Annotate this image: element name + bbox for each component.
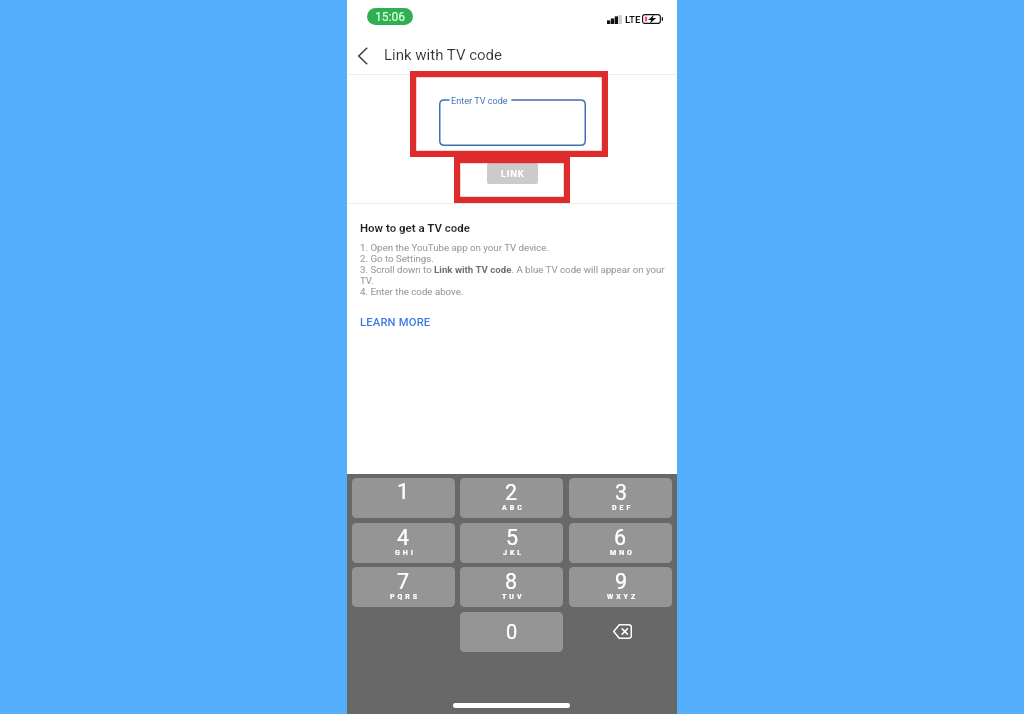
staticText: 1 bbox=[397, 479, 410, 504]
staticText: How to get a TV code bbox=[360, 221, 471, 234]
staticText: 4 bbox=[397, 525, 410, 550]
button[interactable]: 5 bbox=[460, 523, 563, 563]
staticText: 6 bbox=[614, 525, 627, 550]
button[interactable]: 0 bbox=[460, 612, 563, 652]
button[interactable]: 8 bbox=[460, 567, 563, 607]
staticText: LTE bbox=[625, 14, 641, 25]
staticText: 2 bbox=[505, 480, 518, 505]
staticText: PQRS bbox=[390, 593, 421, 601]
staticText: Enter TV code bbox=[451, 96, 508, 107]
staticText: 9 bbox=[615, 569, 628, 594]
staticText: ABC bbox=[502, 504, 525, 512]
button[interactable]: Back bbox=[348, 41, 378, 71]
staticText: Link with TV code bbox=[384, 46, 503, 64]
button[interactable]: Backspace bbox=[569, 612, 672, 652]
button[interactable]: 7 bbox=[352, 567, 455, 607]
staticText: WXYZ bbox=[607, 593, 639, 601]
button[interactable]: 1 bbox=[352, 478, 455, 518]
staticText: LINK bbox=[501, 168, 525, 179]
staticText: TUV bbox=[502, 593, 525, 601]
staticText: MNO bbox=[610, 549, 635, 557]
button[interactable]: 3 bbox=[569, 478, 672, 518]
button[interactable]: LINK bbox=[487, 163, 538, 184]
button[interactable]: 4 bbox=[352, 523, 455, 563]
staticText: LEARN MORE bbox=[360, 316, 431, 329]
button[interactable]: LEARN MORE bbox=[360, 316, 431, 329]
staticText: 5 bbox=[506, 525, 519, 550]
staticText: GHI bbox=[395, 549, 416, 557]
button[interactable]: 9 bbox=[569, 567, 672, 607]
button[interactable]: Enter TV code bbox=[439, 93, 586, 146]
staticText: 1. Open the YouTube app on your TV devic… bbox=[360, 242, 671, 297]
button[interactable]: 6 bbox=[569, 523, 672, 563]
staticText: 15:06 bbox=[375, 10, 405, 24]
button[interactable]: 2 bbox=[460, 478, 563, 518]
staticText: 0 bbox=[506, 620, 518, 643]
staticText: DEF bbox=[612, 504, 634, 512]
staticText: 3 bbox=[615, 480, 628, 505]
staticText: 8 bbox=[505, 569, 518, 594]
staticText: 7 bbox=[397, 569, 410, 594]
staticText: JKL bbox=[503, 549, 525, 557]
